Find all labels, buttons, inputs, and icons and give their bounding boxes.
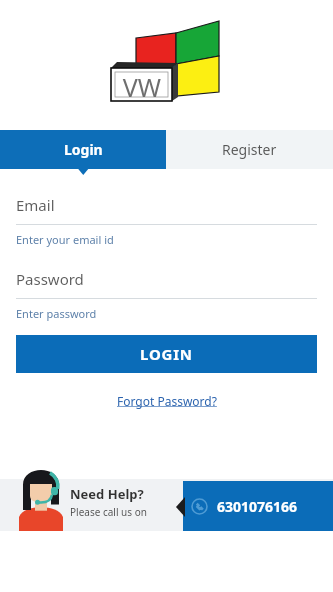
button[interactable]: Enter your email id — [16, 232, 317, 247]
staticText: Need Help? — [70, 485, 144, 503]
staticText: Login — [64, 140, 103, 159]
staticText: VW — [117, 70, 167, 104]
staticText: Email — [16, 195, 55, 215]
button[interactable]: Enter password — [16, 306, 317, 321]
staticText: Register — [222, 140, 277, 159]
staticText: LOGIN — [140, 344, 193, 364]
other: Call — [191, 498, 208, 515]
staticText: Password — [16, 269, 84, 289]
button[interactable]: Register — [166, 130, 333, 169]
staticText: 6301076166 — [217, 497, 298, 516]
button[interactable]: Call — [183, 481, 333, 531]
button[interactable]: LOGIN — [16, 335, 317, 373]
staticText: Please call us on — [70, 505, 147, 519]
button[interactable]: Login — [0, 130, 166, 169]
button[interactable]: Forgot Password? — [117, 393, 217, 409]
